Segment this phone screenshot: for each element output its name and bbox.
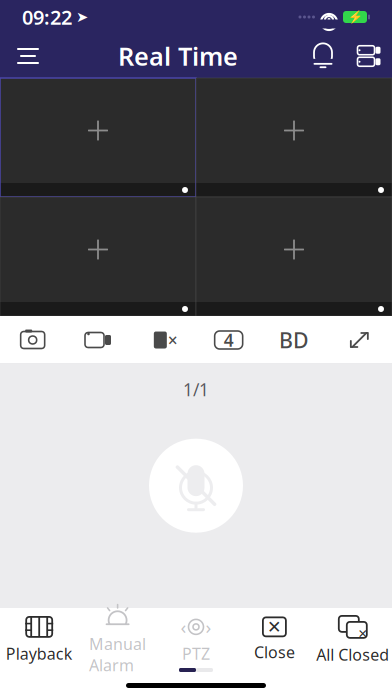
staticText: ✕ bbox=[358, 627, 368, 641]
staticText: All Closed bbox=[316, 644, 389, 665]
button[interactable]: BD bbox=[261, 316, 327, 364]
staticText: 4 bbox=[224, 328, 234, 351]
button[interactable]: Camera window bbox=[196, 78, 392, 197]
staticText: › bbox=[205, 614, 211, 639]
staticText: PTZ bbox=[182, 643, 210, 664]
button[interactable]: Audio muted bbox=[131, 316, 196, 364]
staticText: ➤ bbox=[76, 9, 88, 25]
button[interactable]: ‹ bbox=[157, 614, 235, 666]
staticText: Close bbox=[254, 641, 295, 663]
staticText: Real Time bbox=[118, 39, 238, 73]
staticText: BD bbox=[279, 326, 309, 354]
button[interactable]: Devices bbox=[346, 34, 392, 78]
button[interactable]: Snapshot bbox=[0, 316, 65, 364]
staticText: ‹ bbox=[180, 614, 186, 639]
staticText: 1/1 bbox=[183, 378, 209, 401]
button[interactable]: Camera window bbox=[0, 197, 196, 316]
staticText: ✕ bbox=[267, 617, 282, 637]
button[interactable]: ✕ bbox=[235, 614, 314, 666]
button[interactable]: Split layout 4 bbox=[196, 316, 261, 364]
button[interactable]: Playback bbox=[0, 614, 78, 666]
button[interactable]: Manual Alarm bbox=[78, 614, 157, 666]
button[interactable]: Full screen bbox=[327, 316, 392, 364]
staticText: Playback bbox=[6, 643, 73, 664]
button[interactable]: Camera window bbox=[0, 78, 196, 197]
button[interactable]: ✕ bbox=[314, 614, 392, 666]
staticText: × bbox=[168, 328, 178, 351]
button[interactable]: Alarms bbox=[300, 34, 346, 78]
button[interactable]: Camera window bbox=[196, 197, 392, 316]
staticText: 09:22 bbox=[22, 4, 72, 30]
staticText: Manual Alarm bbox=[89, 633, 146, 676]
staticText: ⚡ bbox=[347, 10, 362, 24]
button[interactable]: Record bbox=[65, 316, 131, 364]
button[interactable]: Menu bbox=[0, 34, 56, 78]
button[interactable]: Microphone muted bbox=[149, 439, 243, 533]
